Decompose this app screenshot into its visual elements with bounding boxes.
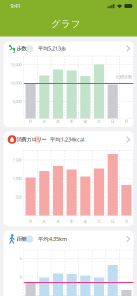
staticText: 木 bbox=[70, 219, 74, 224]
staticText: 土 bbox=[97, 219, 101, 224]
staticText: 火 bbox=[42, 219, 46, 224]
staticText: 500 bbox=[15, 194, 21, 200]
staticText: 歩数 bbox=[16, 45, 26, 52]
staticText: 水 bbox=[56, 219, 60, 224]
staticText: 1,500 bbox=[12, 157, 21, 163]
staticText: 消費カロリー bbox=[16, 136, 46, 143]
staticText: 金 bbox=[83, 119, 87, 124]
staticText: 月 bbox=[29, 119, 33, 124]
staticText: 1,000 bbox=[12, 176, 21, 181]
staticText: 5,000 bbox=[12, 99, 21, 104]
staticText: グラフ bbox=[51, 18, 81, 30]
staticText: 木 bbox=[70, 119, 74, 124]
staticText: 15,000 bbox=[10, 62, 21, 67]
staticText: 目標歩数 bbox=[116, 74, 132, 79]
staticText: 平均:1,234kcal bbox=[50, 136, 84, 143]
staticText: 土 bbox=[97, 119, 101, 124]
staticText: 平均:4.35km bbox=[38, 235, 67, 243]
staticText: 月 bbox=[29, 219, 33, 224]
staticText: 火 bbox=[42, 119, 46, 124]
staticText: 4 bbox=[19, 274, 21, 280]
staticText: 水 bbox=[56, 119, 60, 124]
staticText: 月 bbox=[124, 219, 128, 224]
staticText: 9:41 bbox=[10, 2, 20, 10]
staticText: 10,000 bbox=[10, 80, 21, 86]
staticText: 距離 bbox=[16, 236, 26, 242]
staticText: 金 bbox=[83, 219, 87, 224]
staticText: 月 bbox=[124, 119, 128, 124]
staticText: 6 bbox=[19, 256, 21, 261]
staticText: 平均5,213歩 bbox=[38, 45, 66, 52]
staticText: 日 bbox=[111, 119, 115, 124]
staticText: 日 bbox=[111, 219, 115, 224]
